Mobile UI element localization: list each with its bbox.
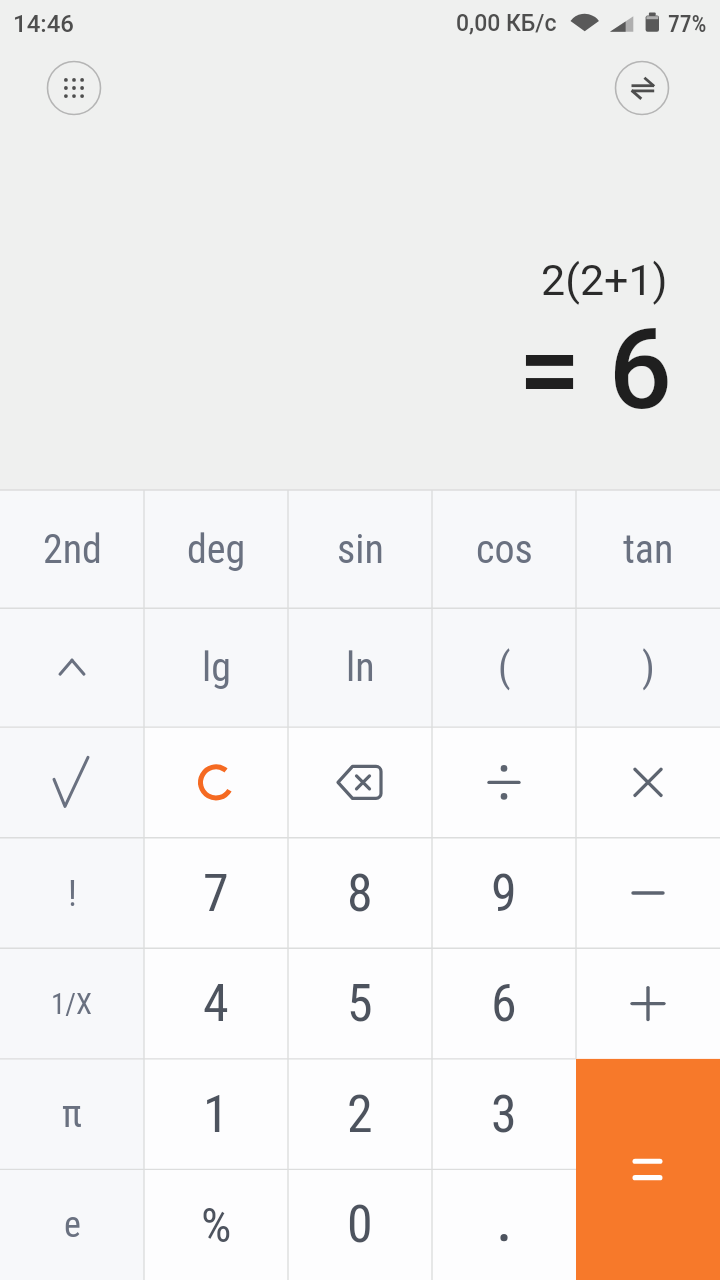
button[interactable]: sin <box>288 490 432 608</box>
button[interactable]: 2nd <box>0 490 144 608</box>
button[interactable] <box>576 948 720 1059</box>
button[interactable] <box>432 1169 576 1280</box>
button[interactable]: 4 <box>144 948 288 1059</box>
staticText: 0 <box>347 1194 373 1255</box>
button[interactable] <box>576 1059 720 1280</box>
button[interactable]: % <box>144 1169 288 1280</box>
button[interactable]: ! <box>0 838 144 949</box>
staticText: cos <box>476 526 533 573</box>
staticText: ! <box>68 873 77 915</box>
button[interactable]: π <box>0 1059 144 1170</box>
button[interactable] <box>288 727 432 838</box>
button[interactable] <box>0 608 144 727</box>
staticText: 7 <box>203 863 229 924</box>
button[interactable] <box>576 727 720 838</box>
button[interactable]: 3 <box>432 1059 576 1170</box>
button[interactable] <box>47 61 101 115</box>
staticText: % <box>201 1197 232 1253</box>
staticText: 1 <box>203 1084 229 1145</box>
button[interactable]: 2 <box>288 1059 432 1170</box>
staticText: deg <box>187 526 246 573</box>
button[interactable]: 1 <box>144 1059 288 1170</box>
button[interactable] <box>432 727 576 838</box>
button[interactable]: cos <box>432 490 576 608</box>
staticText: 6 <box>491 973 517 1034</box>
staticText: lg <box>202 644 231 691</box>
staticText: 14:46 <box>13 10 74 38</box>
staticText: 1/X <box>51 987 93 1021</box>
staticText: ln <box>346 644 375 691</box>
staticText: 4 <box>203 973 229 1034</box>
button[interactable]: 9 <box>432 838 576 949</box>
staticText: 8 <box>347 863 373 924</box>
button[interactable]: ln <box>288 608 432 727</box>
button[interactable]: deg <box>144 490 288 608</box>
button[interactable]: tan <box>576 490 720 608</box>
button[interactable]: lg <box>144 608 288 727</box>
staticText: sin <box>337 526 384 573</box>
staticText: 3 <box>491 1084 517 1145</box>
button[interactable] <box>144 727 288 838</box>
staticText: 5 <box>347 973 373 1034</box>
staticText: ( <box>498 644 511 691</box>
button[interactable]: 7 <box>144 838 288 949</box>
button[interactable]: 0 <box>288 1169 432 1280</box>
button[interactable]: ( <box>432 608 576 727</box>
staticText: 2nd <box>43 526 102 573</box>
button[interactable]: 5 <box>288 948 432 1059</box>
staticText: = 6 <box>518 304 673 435</box>
button[interactable]: 8 <box>288 838 432 949</box>
button[interactable] <box>0 727 144 838</box>
button[interactable]: ) <box>576 608 720 727</box>
staticText: 9 <box>491 863 517 924</box>
button[interactable]: 1/X <box>0 948 144 1059</box>
staticText: 77% <box>668 10 707 38</box>
staticText: 0,00 КБ/с <box>456 10 557 37</box>
button[interactable]: 6 <box>432 948 576 1059</box>
button[interactable] <box>576 838 720 949</box>
button[interactable] <box>615 61 669 115</box>
staticText: tan <box>623 526 674 573</box>
staticText: 2(2+1) <box>541 255 668 305</box>
staticText: ) <box>642 644 655 691</box>
staticText: π <box>62 1092 82 1137</box>
staticText: e <box>64 1204 81 1246</box>
staticText: 2 <box>347 1084 373 1145</box>
button[interactable]: e <box>0 1169 144 1280</box>
